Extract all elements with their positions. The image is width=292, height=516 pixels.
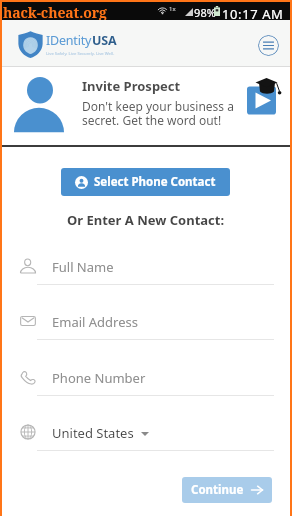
button[interactable]: Email Address	[2, 305, 290, 340]
button[interactable]: Watch training video	[243, 74, 291, 126]
button[interactable]: Full Name	[2, 250, 290, 285]
staticText: Don't keep your business a secret. Get t…	[82, 98, 234, 129]
staticText: Email Address	[52, 313, 138, 331]
staticText: Or Enter A New Contact:	[67, 211, 225, 229]
staticText: USA	[92, 32, 117, 49]
staticText: 10:17 AM	[222, 5, 284, 23]
button[interactable]: Phone Number	[2, 361, 290, 396]
button[interactable]: United States	[2, 416, 290, 451]
button[interactable]: Select Phone Contact	[61, 168, 230, 196]
staticText: Invite Prospect	[82, 77, 181, 95]
staticText: Live Safely. Live Securely. Live Well.	[46, 51, 115, 57]
staticText: Full Name	[52, 258, 114, 276]
staticText: IDentity	[46, 32, 92, 49]
staticText: Phone Number	[52, 369, 146, 387]
staticText: Select Phone Contact	[94, 174, 216, 190]
staticText: 1x	[169, 5, 176, 13]
button[interactable]: Continue	[182, 477, 272, 503]
staticText: 98%	[194, 5, 217, 20]
button[interactable]: Menu	[258, 35, 279, 56]
staticText: United States	[52, 424, 134, 442]
staticText: Continue	[191, 482, 244, 498]
staticText: hack-cheat.org	[3, 3, 107, 21]
